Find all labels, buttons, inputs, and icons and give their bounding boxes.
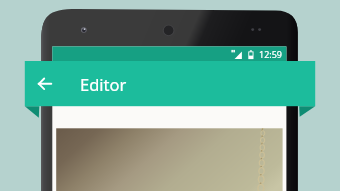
button[interactable]: Back <box>31 70 59 98</box>
staticText: 12:59 <box>259 48 283 60</box>
button[interactable]: Editor <box>80 73 127 95</box>
